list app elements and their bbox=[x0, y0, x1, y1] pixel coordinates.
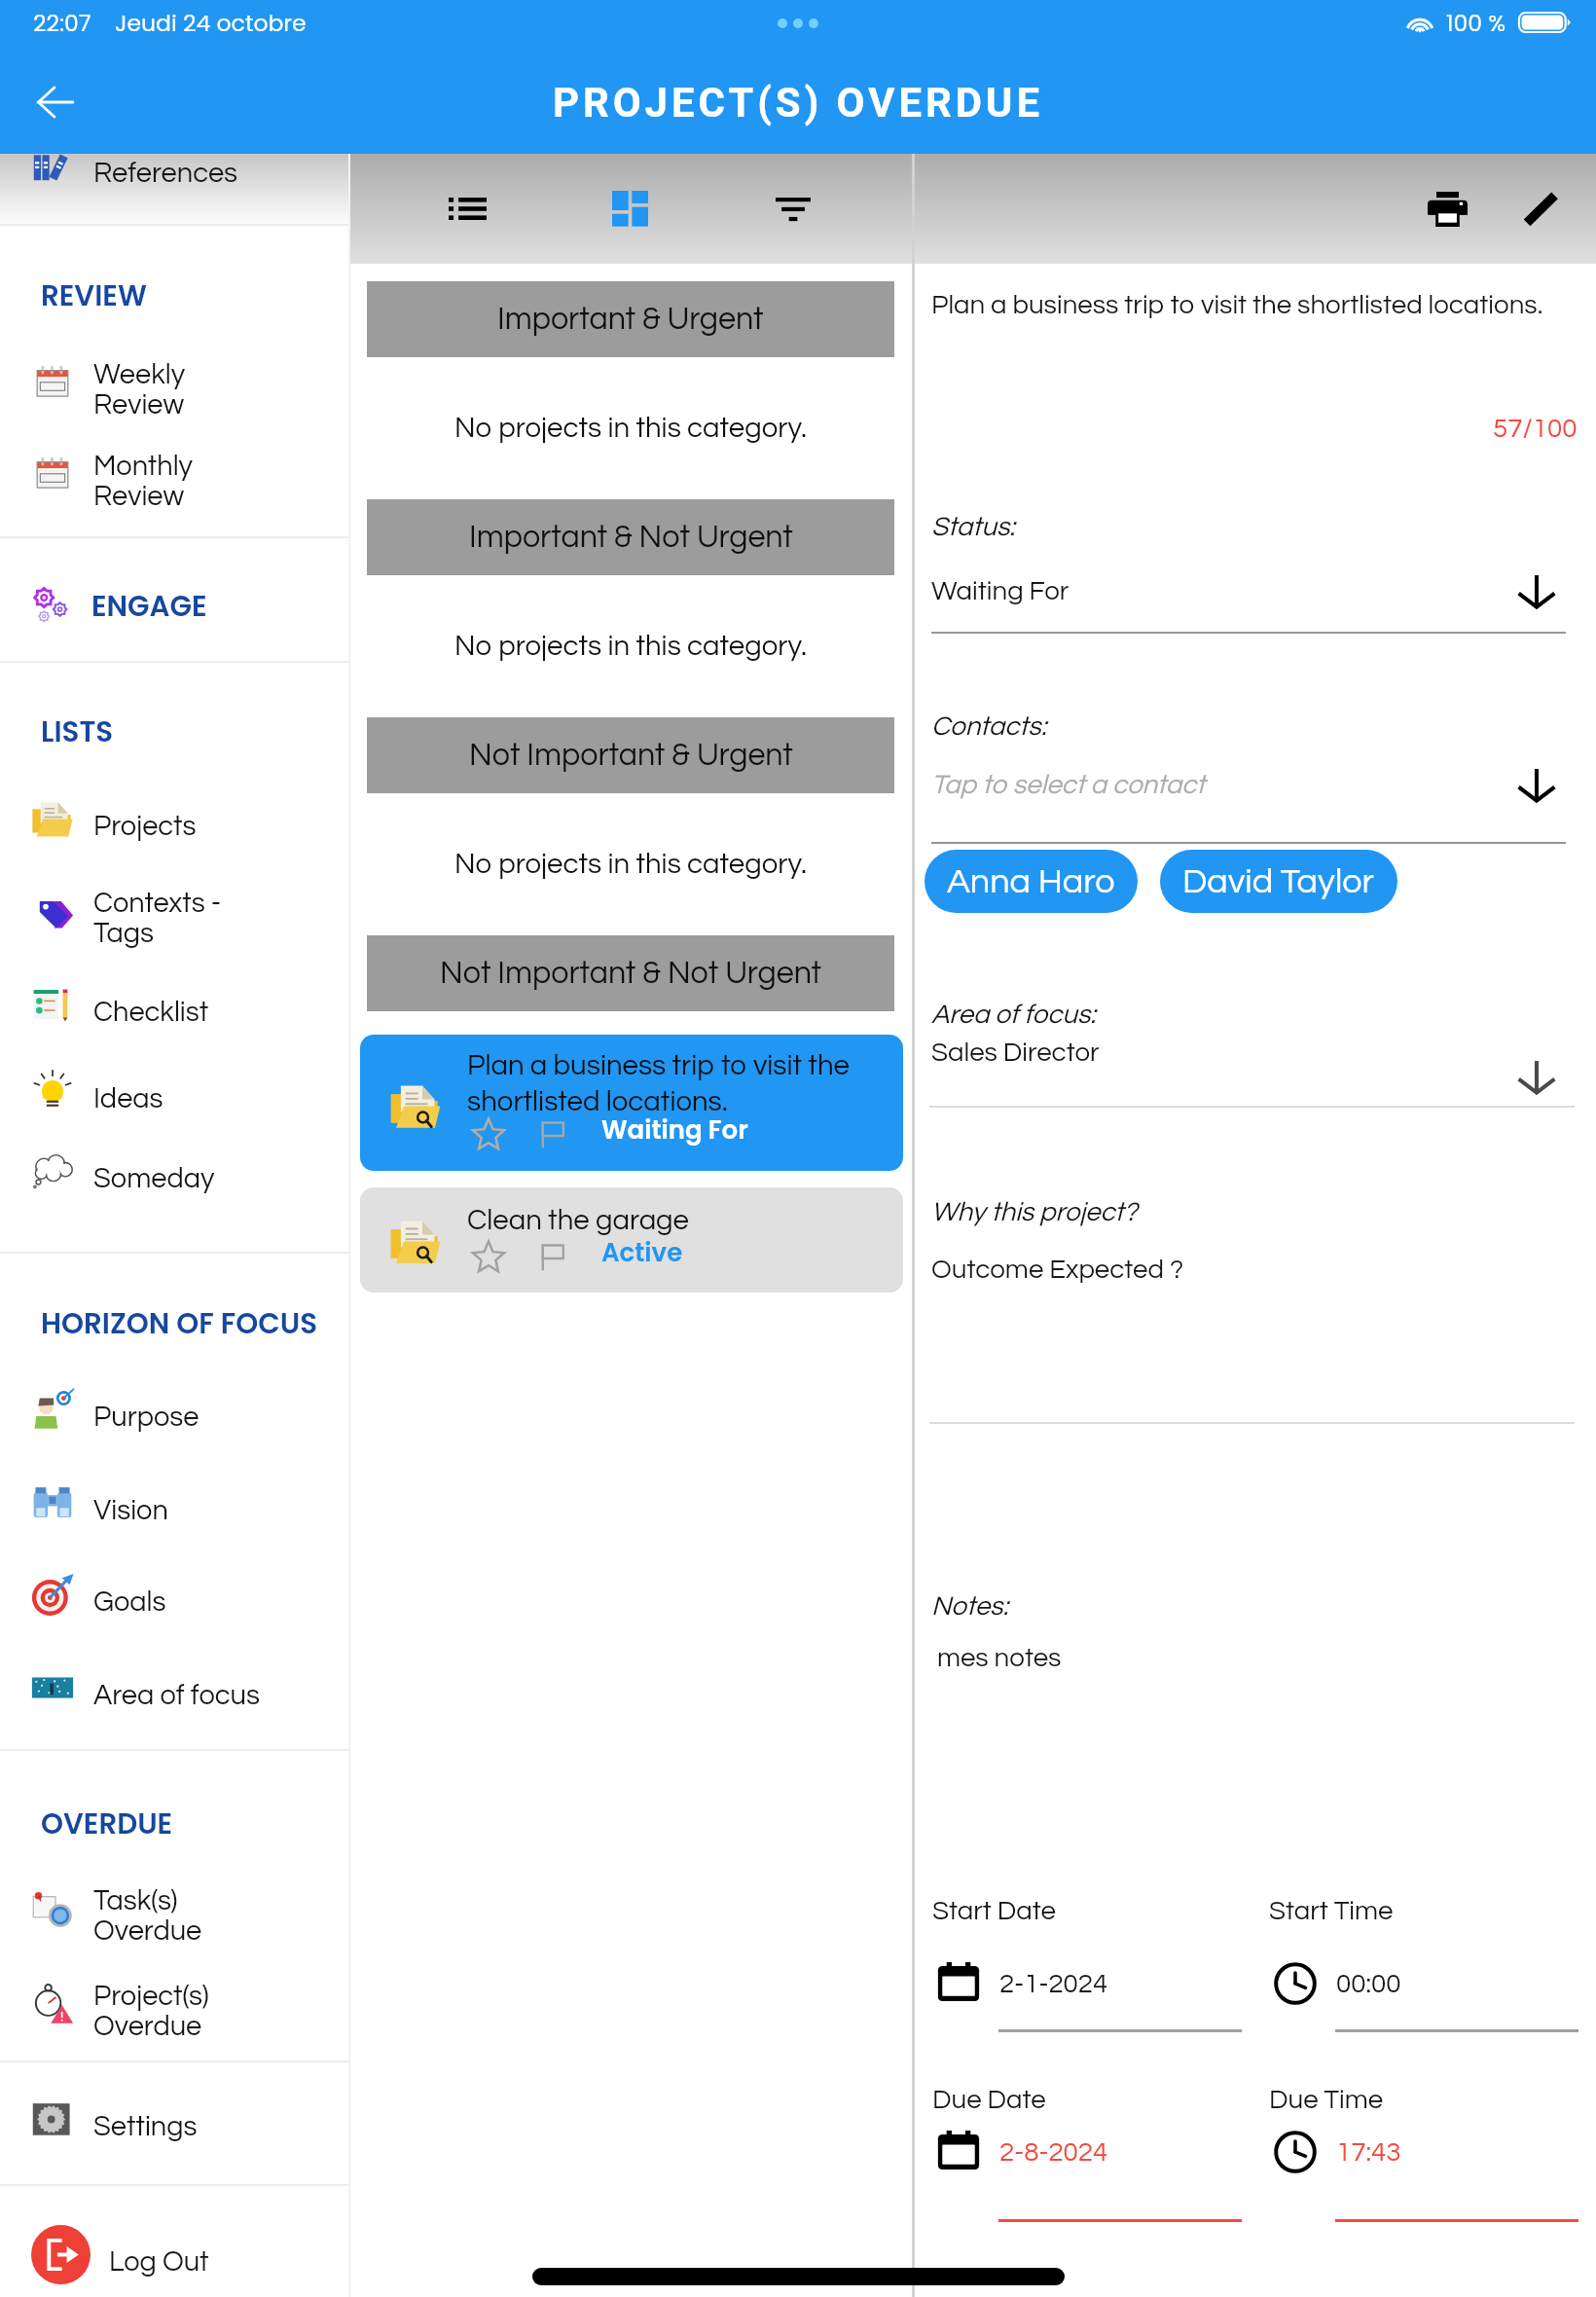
staticText: Task(s) Overdue bbox=[93, 1886, 202, 1947]
button[interactable]: Project(s) Overdue bbox=[0, 1960, 350, 2048]
button[interactable]: 00:00 bbox=[1274, 1957, 1401, 2010]
staticText: Active bbox=[601, 1235, 683, 1270]
staticText: No projects in this category. bbox=[454, 850, 808, 879]
staticText: Notes: bbox=[931, 1592, 1009, 1621]
button[interactable]: OVERDUE bbox=[0, 1794, 350, 1852]
button[interactable]: Select area of focus bbox=[1509, 1050, 1564, 1103]
button[interactable]: Select contact bbox=[1509, 758, 1564, 811]
staticText: Clean the garage bbox=[467, 1206, 689, 1235]
button[interactable]: 2-1-2024 bbox=[937, 1957, 1108, 2010]
button[interactable]: ENGAGE bbox=[0, 576, 350, 635]
button[interactable]: Back bbox=[0, 51, 111, 154]
staticText: Area of focus: bbox=[931, 1001, 1096, 1029]
button[interactable]: Not Important & Not Urgent bbox=[367, 935, 894, 1011]
button[interactable]: Projects bbox=[0, 775, 350, 862]
staticText: Project(s) Overdue bbox=[93, 1982, 209, 2042]
button[interactable]: Log Out bbox=[0, 2210, 350, 2297]
staticText: shortlisted locations. bbox=[467, 1087, 728, 1116]
staticText: HORIZON OF FOCUS bbox=[41, 1303, 318, 1343]
staticText: 2-1-2024 bbox=[999, 1970, 1108, 1998]
staticText: Outcome Expected ? bbox=[931, 1256, 1184, 1284]
staticText: Waiting For bbox=[931, 577, 1070, 605]
staticText: OVERDUE bbox=[41, 1804, 173, 1843]
button[interactable]: 2-8-2024 bbox=[937, 2126, 1108, 2178]
staticText: Start Date bbox=[932, 1897, 1056, 1925]
staticText: Plan a business trip to visit the bbox=[467, 1051, 850, 1080]
staticText: 2-8-2024 bbox=[999, 2138, 1108, 2167]
staticText: 00:00 bbox=[1336, 1970, 1401, 1998]
staticText: Jeudi 24 octobre bbox=[115, 7, 307, 39]
button[interactable]: Vision bbox=[0, 1459, 350, 1547]
staticText: References bbox=[93, 159, 238, 188]
button[interactable]: Ideas bbox=[0, 1047, 350, 1135]
staticText: Projects bbox=[93, 812, 197, 841]
staticText: David Taylor bbox=[1182, 863, 1375, 899]
button[interactable]: HORIZON OF FOCUS bbox=[0, 1294, 350, 1352]
button[interactable]: Settings bbox=[0, 2075, 350, 2163]
staticText: 57/100 bbox=[1493, 415, 1578, 443]
staticText: REVIEW bbox=[41, 275, 147, 315]
button[interactable]: Filter bbox=[740, 154, 847, 264]
staticText: mes notes bbox=[931, 1644, 1062, 1672]
staticText: Someday bbox=[93, 1164, 215, 1193]
staticText: Not Important & Urgent bbox=[469, 740, 793, 772]
button[interactable]: Edit bbox=[1487, 154, 1594, 264]
button[interactable]: Clean the garage bbox=[360, 1187, 903, 1293]
button[interactable]: Anna Haro bbox=[925, 850, 1138, 913]
staticText: Ideas bbox=[93, 1084, 163, 1113]
staticText: Vision bbox=[93, 1496, 168, 1525]
button[interactable]: References bbox=[0, 122, 350, 209]
staticText: PROJECT(S) OVERDUE bbox=[553, 79, 1043, 127]
staticText: Important & Not Urgent bbox=[469, 522, 793, 554]
button[interactable]: Purpose bbox=[0, 1366, 350, 1453]
staticText: Waiting For bbox=[601, 1112, 748, 1148]
button[interactable]: Grid view bbox=[576, 154, 683, 264]
staticText: Status: bbox=[931, 513, 1015, 541]
button[interactable]: Contexts - Tags bbox=[0, 867, 350, 955]
button[interactable]: Monthly Review bbox=[0, 430, 350, 518]
staticText: No projects in this category. bbox=[454, 632, 808, 661]
button[interactable]: Not Important & Urgent bbox=[367, 717, 894, 793]
staticText: Tap to select a contact bbox=[931, 771, 1206, 799]
staticText: Important & Urgent bbox=[497, 304, 764, 336]
staticText: Start Time bbox=[1269, 1897, 1394, 1925]
staticText: 22:07 bbox=[33, 7, 91, 39]
button[interactable]: David Taylor bbox=[1160, 850, 1397, 913]
staticText: 17:43 bbox=[1336, 2138, 1401, 2167]
button[interactable]: Area of focus bbox=[0, 1644, 350, 1732]
staticText: Sales Director bbox=[931, 1039, 1100, 1067]
staticText: Purpose bbox=[93, 1403, 199, 1432]
staticText: Checklist bbox=[93, 998, 209, 1027]
staticText: Contacts: bbox=[931, 712, 1047, 741]
button[interactable]: LISTS bbox=[0, 702, 350, 760]
staticText: Settings bbox=[93, 2112, 198, 2141]
staticText: LISTS bbox=[41, 711, 114, 751]
staticText: Due Date bbox=[932, 2086, 1046, 2114]
staticText: 100 % bbox=[1446, 7, 1506, 39]
button[interactable]: List view bbox=[414, 154, 521, 264]
button[interactable]: Someday bbox=[0, 1127, 350, 1215]
button[interactable]: 17:43 bbox=[1274, 2126, 1401, 2178]
staticText: Contexts - Tags bbox=[93, 889, 222, 949]
staticText: ENGAGE bbox=[91, 586, 207, 626]
button[interactable]: Print bbox=[1394, 154, 1501, 264]
staticText: Due Time bbox=[1269, 2086, 1384, 2114]
staticText: No projects in this category. bbox=[454, 414, 808, 443]
button[interactable]: Goals bbox=[0, 1550, 350, 1638]
button[interactable]: Important & Not Urgent bbox=[367, 499, 894, 575]
button[interactable]: Select status bbox=[1509, 565, 1564, 617]
staticText: Weekly Review bbox=[93, 360, 186, 420]
staticText: Anna Haro bbox=[947, 863, 1115, 899]
staticText: Not Important & Not Urgent bbox=[440, 958, 822, 990]
button[interactable]: Checklist bbox=[0, 961, 350, 1048]
staticText: Why this project? bbox=[931, 1198, 1138, 1226]
button[interactable]: Plan a business trip to visit the bbox=[360, 1035, 903, 1171]
staticText: Plan a business trip to visit the shortl… bbox=[931, 291, 1543, 319]
button[interactable]: Task(s) Overdue bbox=[0, 1865, 350, 1952]
button[interactable]: Weekly Review bbox=[0, 339, 350, 426]
staticText: Monthly Review bbox=[93, 452, 194, 512]
staticText: Log Out bbox=[109, 2247, 209, 2277]
button[interactable]: Important & Urgent bbox=[367, 281, 894, 357]
button[interactable]: REVIEW bbox=[0, 266, 350, 324]
staticText: Goals bbox=[93, 1587, 166, 1617]
